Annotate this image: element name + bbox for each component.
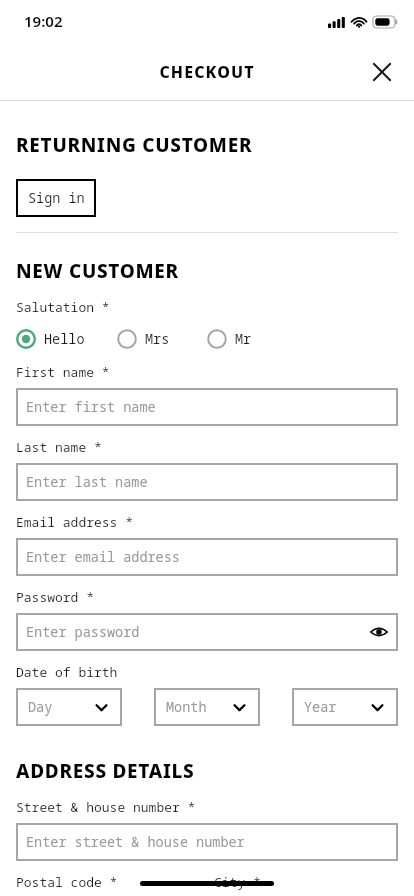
staticText: Month — [166, 698, 207, 716]
staticText: Day — [28, 698, 53, 716]
button[interactable]: Enter email address — [16, 538, 398, 576]
staticText: NEW CUSTOMER — [16, 258, 179, 284]
button[interactable]: Enter last name — [16, 463, 398, 501]
staticText: Enter password — [26, 623, 140, 641]
staticText: First name * — [16, 363, 110, 381]
button[interactable]: Day — [16, 688, 122, 726]
staticText: Salutation * — [16, 298, 110, 316]
staticText: Postal code * — [16, 873, 118, 891]
staticText: Mrs — [145, 330, 170, 348]
staticText: City * — [214, 873, 261, 891]
button[interactable]: Enter password — [16, 613, 398, 651]
staticText: ADDRESS DETAILS — [16, 758, 195, 784]
staticText: Mr — [235, 330, 252, 348]
button[interactable]: Sign in — [16, 179, 96, 217]
staticText: Year — [304, 698, 337, 716]
staticText: Enter email address — [26, 548, 180, 566]
staticText: 19:02 — [24, 11, 63, 31]
staticText: Enter last name — [26, 473, 148, 491]
staticText: CHECKOUT — [159, 61, 255, 83]
staticText: Street & house number * — [16, 798, 196, 816]
staticText: Enter street & house number — [26, 833, 245, 851]
staticText: Last name * — [16, 438, 102, 456]
button[interactable]: Month — [154, 688, 260, 726]
button[interactable]: Enter first name — [16, 388, 398, 426]
button[interactable]: Close — [362, 52, 402, 92]
staticText: Date of birth — [16, 663, 118, 681]
staticText: Hello — [44, 330, 85, 348]
button[interactable]: Enter street & house number — [16, 823, 398, 861]
button[interactable]: Mrs — [117, 329, 207, 349]
staticText: Password * — [16, 588, 95, 606]
staticText: RETURNING CUSTOMER — [16, 132, 253, 158]
staticText: Enter first name — [26, 398, 156, 416]
button[interactable]: Show password — [360, 613, 398, 651]
staticText: Sign in — [28, 189, 85, 207]
button[interactable]: Mr — [207, 329, 252, 349]
button[interactable]: Year — [292, 688, 398, 726]
staticText: Email address * — [16, 513, 134, 531]
button[interactable]: Hello — [16, 329, 117, 349]
